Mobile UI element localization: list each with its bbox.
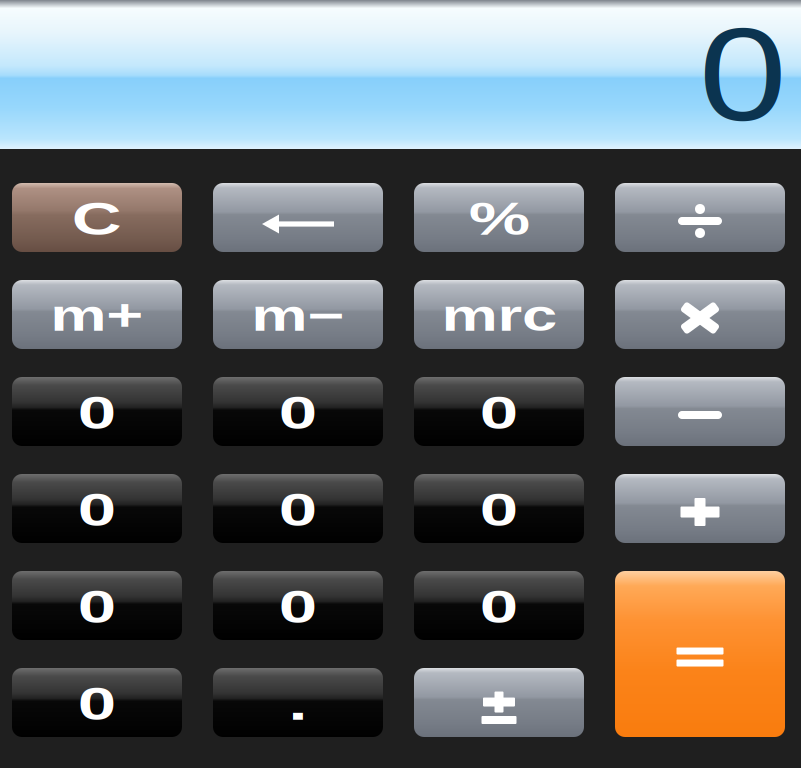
button[interactable]: 0 (0, 0, 801, 768)
staticText: m+ (64, 291, 129, 340)
button[interactable]: mrc (0, 0, 801, 768)
staticText: mrc (459, 291, 539, 340)
staticText: m− (265, 291, 330, 340)
button[interactable]: m+ (0, 0, 801, 768)
button[interactable]: 0 (0, 0, 801, 768)
button[interactable]: Plus minus (0, 0, 801, 768)
button[interactable]: Equals (0, 0, 801, 768)
button[interactable]: Plus (0, 0, 801, 768)
staticText: C (80, 192, 114, 244)
staticText: % (478, 192, 519, 244)
button[interactable]: 0 (0, 0, 801, 768)
staticText: 0 (285, 386, 311, 438)
staticText: . (291, 677, 304, 729)
staticText: 0 (486, 483, 512, 535)
button[interactable]: % (0, 0, 801, 768)
button[interactable]: Divide (0, 0, 801, 768)
staticText: 0 (285, 580, 311, 632)
button[interactable]: 0 (0, 0, 801, 768)
staticText: 0 (486, 386, 512, 438)
button[interactable]: Multiply (0, 0, 801, 768)
staticText: 0 (285, 483, 311, 535)
staticText: 0 (706, 1, 779, 148)
button[interactable]: Minus (0, 0, 801, 768)
button[interactable]: . (0, 0, 801, 768)
button[interactable]: Backspace (0, 0, 801, 768)
staticText: 0 (84, 677, 110, 729)
staticText: 0 (84, 386, 110, 438)
button[interactable]: 0 (0, 0, 801, 768)
button[interactable]: C (0, 0, 801, 768)
button[interactable]: 0 (0, 0, 801, 768)
staticText: 0 (84, 580, 110, 632)
staticText: 0 (84, 483, 110, 535)
button[interactable]: 0 (0, 0, 801, 768)
button[interactable]: 0 (0, 0, 801, 768)
button[interactable]: 0 (0, 0, 801, 768)
button[interactable]: m− (0, 0, 801, 768)
button[interactable]: 0 (0, 0, 801, 768)
staticText: 0 (486, 580, 512, 632)
